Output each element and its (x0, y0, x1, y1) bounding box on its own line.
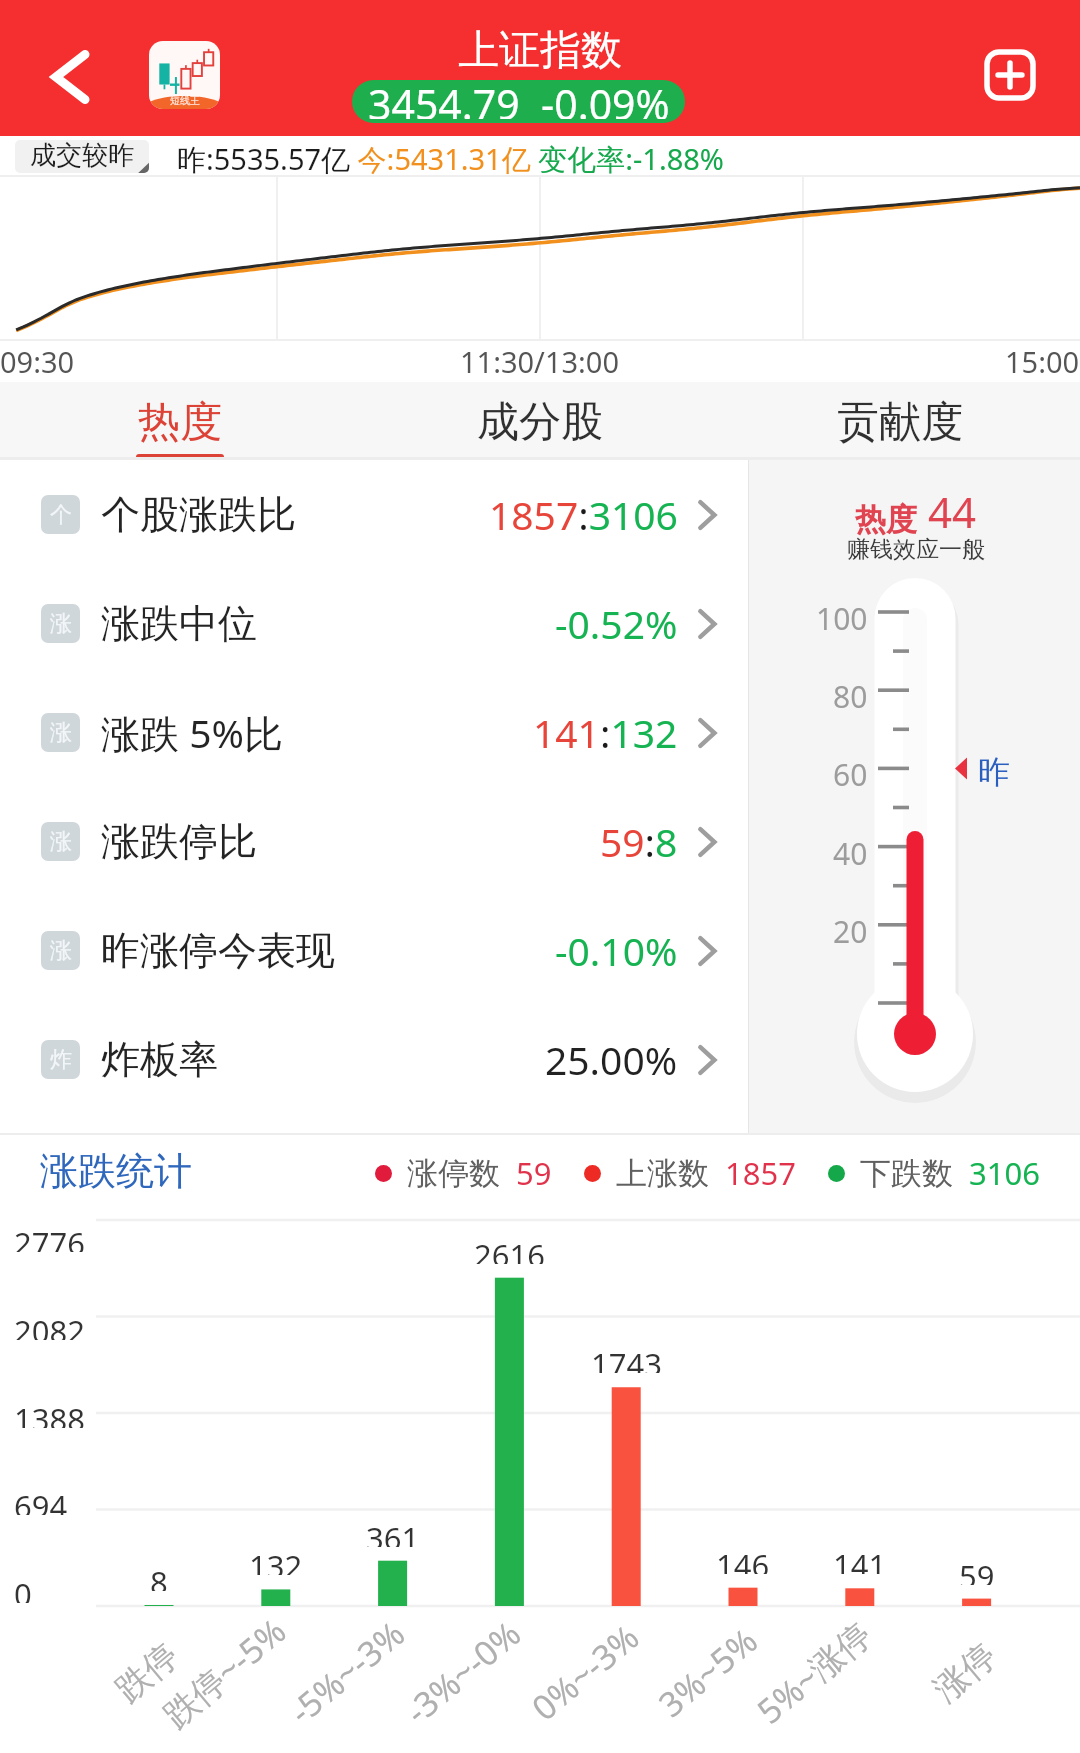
staticText: 跌停~-5% (153, 1607, 296, 1737)
staticText: 5%~涨停 (747, 1611, 881, 1733)
staticText: 昨 (978, 752, 1010, 792)
staticText: 涨 (50, 937, 72, 965)
staticText: 8 (150, 1561, 168, 1591)
staticText: 11:30/13:00 (460, 342, 620, 381)
staticText: 59 (959, 1555, 995, 1585)
button[interactable]: Back (24, 31, 116, 123)
staticText: 成交较昨 (30, 140, 134, 172)
staticText: -3%~-0% (395, 1610, 530, 1734)
staticText: 赚钱效应一般 (847, 535, 985, 564)
button[interactable]: Add to watchlist (970, 35, 1050, 115)
button[interactable]: App logo (149, 41, 220, 109)
staticText: 昨:5535.57亿 今:5431.31亿 变化率:-1.88% (177, 139, 724, 178)
staticText: 1388 (14, 1398, 85, 1428)
staticText: 涨停 (925, 1634, 1005, 1711)
staticText: 59 (516, 1152, 552, 1194)
staticText: -5%~-3% (279, 1610, 414, 1734)
staticText: 涨停数 (407, 1154, 500, 1193)
staticText: 炸板率 (101, 1035, 218, 1084)
staticText: 涨 (50, 828, 72, 856)
staticText: 短线王 (170, 94, 200, 107)
staticText: 3454.79 -0.09% (368, 80, 670, 119)
staticText: 20 (833, 911, 868, 952)
staticText: 贡献度 (837, 396, 963, 449)
staticText: 涨跌中位 (101, 599, 257, 648)
staticText: 涨 (50, 719, 72, 747)
staticText: -0.10% (555, 924, 678, 977)
staticText: 44 (928, 483, 977, 540)
staticText: 15:00 (1005, 342, 1080, 381)
staticText: 361 (366, 1517, 420, 1547)
staticText: 跌停 (107, 1634, 187, 1711)
button[interactable]: 炸 (0, 1005, 748, 1114)
staticText: 上涨数 (616, 1154, 709, 1193)
staticText: 40 (833, 833, 868, 874)
staticText: 上证指数 (458, 25, 622, 77)
staticText: 3106 (969, 1152, 1040, 1194)
staticText: 2616 (474, 1234, 545, 1264)
button[interactable]: 涨 (0, 787, 748, 896)
button[interactable]: 成分股 (360, 382, 720, 460)
staticText: 1743 (591, 1343, 662, 1373)
button[interactable]: 热度 (0, 382, 360, 460)
staticText: 个股涨跌比 (101, 490, 296, 539)
button[interactable]: 贡献度 (720, 382, 1080, 460)
staticText: 成分股 (477, 396, 603, 449)
button[interactable]: 涨 (0, 569, 748, 678)
staticText: 涨跌停比 (101, 817, 257, 866)
staticText: 60 (833, 754, 868, 795)
staticText: 2082 (14, 1310, 85, 1340)
staticText: 100 (816, 598, 868, 639)
staticText: 09:30 (0, 342, 75, 381)
staticText: 热度 (138, 396, 222, 449)
staticText: 昨涨停今表现 (101, 926, 335, 975)
staticText: 下跌数 (860, 1154, 953, 1193)
staticText: 141:132 (533, 706, 678, 759)
staticText: 0%~-3% (522, 1614, 648, 1730)
staticText: 80 (833, 676, 868, 717)
staticText: 146 (716, 1544, 770, 1574)
staticText: 0 (14, 1573, 32, 1603)
staticText: 2776 (14, 1222, 85, 1252)
staticText: 热度 (855, 500, 917, 539)
staticText: 3%~5% (649, 1617, 766, 1727)
staticText: 涨跌 5%比 (101, 706, 283, 759)
staticText: 1857 (725, 1152, 796, 1194)
staticText: 141 (833, 1544, 887, 1574)
button[interactable]: 涨 (0, 678, 748, 787)
staticText: 25.00% (545, 1033, 678, 1086)
button[interactable]: 成交较昨 (15, 140, 149, 173)
staticText: 炸 (50, 1046, 72, 1074)
staticText: 1857:3106 (489, 488, 678, 541)
staticText: 132 (249, 1545, 303, 1575)
staticText: 个 (50, 501, 72, 529)
button[interactable]: 个 (0, 460, 748, 569)
staticText: 涨 (50, 610, 72, 638)
button[interactable]: 涨跌统计 (40, 1147, 192, 1195)
staticText: -0.52% (555, 597, 678, 650)
staticText: 59:8 (600, 815, 678, 868)
button[interactable]: 涨 (0, 896, 748, 1005)
staticText: 694 (14, 1485, 68, 1515)
